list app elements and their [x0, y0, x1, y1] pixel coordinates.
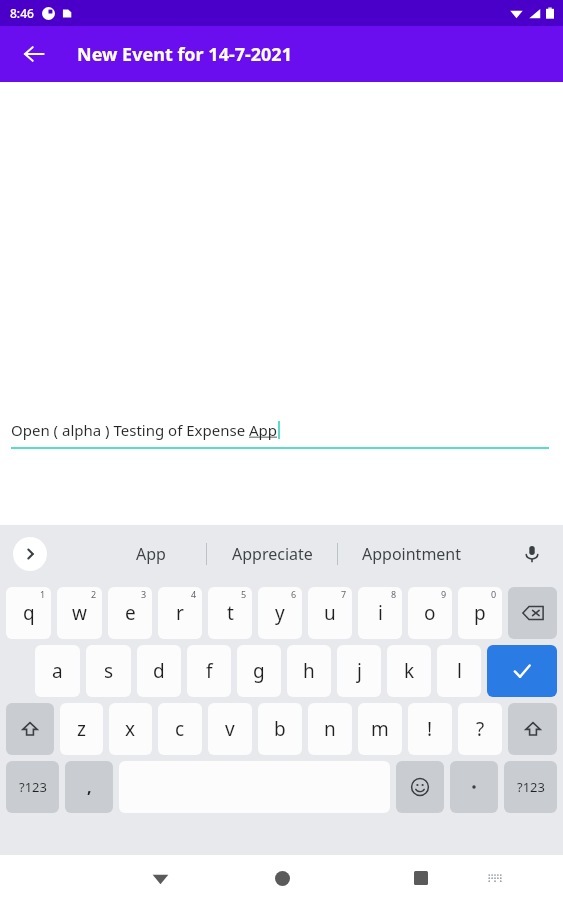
button[interactable]: Recents	[400, 857, 442, 899]
button[interactable]: Back	[139, 857, 181, 899]
staticText: d	[153, 658, 165, 684]
button[interactable]: j	[337, 645, 381, 697]
button[interactable]: Switch keyboard	[475, 858, 515, 898]
staticText: s	[104, 658, 114, 684]
button[interactable]: h	[287, 645, 331, 697]
staticText: 7	[341, 588, 347, 600]
button[interactable]: p	[458, 587, 502, 639]
button[interactable]: e	[108, 587, 152, 639]
staticText: v	[225, 716, 235, 742]
button[interactable]: f	[187, 645, 231, 697]
staticText: New Event for 14-7-2021	[77, 42, 292, 67]
staticText: 8:46	[10, 5, 34, 21]
button[interactable]: r	[158, 587, 202, 639]
staticText: g	[253, 658, 265, 684]
button[interactable]: v	[208, 703, 252, 755]
button[interactable]: u	[308, 587, 352, 639]
button[interactable]: Comma	[65, 761, 113, 813]
button[interactable]: d	[137, 645, 181, 697]
staticText: z	[77, 716, 86, 742]
staticText: k	[404, 658, 415, 684]
button[interactable]: Emoji	[396, 761, 444, 813]
button[interactable]: t	[208, 587, 252, 639]
button[interactable]: o	[408, 587, 452, 639]
staticText: q	[23, 600, 35, 626]
staticText: h	[303, 658, 315, 684]
staticText: 1	[40, 588, 46, 600]
staticText: n	[324, 716, 336, 742]
button[interactable]: Shift	[6, 703, 54, 755]
staticText: !	[427, 716, 433, 742]
staticText: a	[52, 658, 63, 684]
button[interactable]: m	[358, 703, 402, 755]
button[interactable]: Appreciate	[207, 532, 337, 576]
staticText: c	[175, 716, 185, 742]
staticText: ,	[87, 776, 92, 798]
button[interactable]: z	[60, 703, 103, 755]
staticText: 9	[441, 588, 447, 600]
staticText: 5	[241, 588, 247, 600]
staticText: ?	[476, 716, 485, 742]
staticText: j	[357, 658, 362, 684]
button[interactable]: b	[258, 703, 302, 755]
button[interactable]: App	[96, 532, 206, 576]
staticText: Appreciate	[232, 543, 313, 565]
button[interactable]: l	[437, 645, 481, 697]
staticText: ?123	[19, 778, 47, 796]
button[interactable]: More suggestions	[13, 537, 47, 571]
staticText: f	[206, 658, 213, 684]
staticText: b	[274, 716, 286, 742]
staticText: m	[371, 716, 389, 742]
staticText: 0	[491, 588, 497, 600]
staticText: w	[72, 600, 87, 626]
button[interactable]: Shift	[508, 703, 557, 755]
staticText: 8	[391, 588, 397, 600]
button[interactable]: c	[158, 703, 202, 755]
button[interactable]: k	[387, 645, 431, 697]
button[interactable]: ?	[458, 703, 502, 755]
staticText: App	[249, 420, 278, 440]
staticText: App	[136, 543, 166, 565]
button[interactable]: Home	[261, 857, 303, 899]
button[interactable]: !	[408, 703, 452, 755]
staticText: ?123	[517, 778, 545, 796]
staticText: l	[457, 658, 462, 684]
button[interactable]: n	[308, 703, 352, 755]
button[interactable]: Symbols	[6, 761, 59, 813]
button[interactable]: g	[237, 645, 281, 697]
button[interactable]: Voice input	[515, 537, 549, 571]
staticText: 2	[91, 588, 97, 600]
staticText: o	[424, 600, 436, 626]
button[interactable]: a	[35, 645, 80, 697]
button[interactable]: Backspace	[508, 587, 557, 639]
staticText: Open ( alpha ) Testing of Expense	[11, 420, 249, 440]
button[interactable]: Back	[12, 32, 56, 76]
staticText: 3	[141, 588, 147, 600]
button[interactable]: q	[6, 587, 51, 639]
button[interactable]: y	[258, 587, 302, 639]
staticText: t	[227, 600, 234, 626]
button[interactable]: Symbols	[504, 761, 557, 813]
button[interactable]: s	[86, 645, 131, 697]
button[interactable]: Open ( alpha ) Testing of Expense	[11, 413, 549, 447]
staticText: i	[378, 600, 383, 626]
button[interactable]: x	[109, 703, 152, 755]
staticText: p	[474, 600, 486, 626]
staticText: Appointment	[362, 543, 462, 565]
staticText: y	[275, 600, 285, 626]
staticText: e	[125, 600, 136, 626]
button[interactable]: Period	[450, 761, 498, 813]
staticText: x	[125, 716, 136, 742]
staticText: u	[324, 600, 336, 626]
button[interactable]: w	[57, 587, 102, 639]
button[interactable]: Appointment	[338, 532, 486, 576]
button[interactable]: i	[358, 587, 402, 639]
staticText: r	[176, 600, 184, 626]
staticText: 4	[191, 588, 197, 600]
staticText: 6	[291, 588, 297, 600]
button[interactable]: Enter	[487, 645, 557, 697]
